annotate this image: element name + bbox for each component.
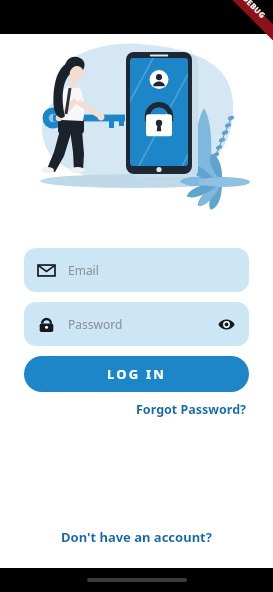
button[interactable]: Don't have an account? [57, 524, 216, 550]
staticText: Password [68, 316, 123, 332]
staticText: Don't have an account? [61, 528, 212, 546]
staticText: DEBUG [241, 0, 268, 21]
button[interactable]: Show password [213, 311, 239, 337]
staticText: Forgot Password? [136, 401, 247, 418]
button[interactable]: LOG IN [24, 356, 249, 392]
button[interactable]: Password [24, 302, 249, 346]
staticText: Email [68, 262, 99, 278]
staticText: LOG IN [107, 365, 166, 383]
button[interactable]: Email [24, 248, 249, 292]
button[interactable]: Forgot Password? [134, 399, 249, 420]
